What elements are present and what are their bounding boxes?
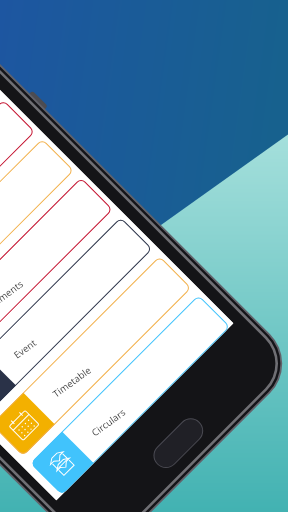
button[interactable]: Timetable icon — [0, 256, 191, 456]
staticText: Event — [10, 333, 40, 364]
staticText: Circulars — [87, 401, 130, 444]
button[interactable]: Assignments icon — [0, 178, 113, 378]
button[interactable]: Attendance icon — [0, 100, 35, 300]
button[interactable]: Messages icon — [0, 139, 74, 339]
button[interactable]: Circulars icon — [30, 295, 230, 495]
button[interactable]: Event icon — [0, 217, 152, 417]
other: Circulars icon — [30, 431, 94, 495]
other: Event icon — [0, 354, 16, 417]
other: Timetable icon — [0, 393, 55, 456]
staticText: Timetable — [49, 358, 95, 405]
staticText: Assignments — [0, 271, 27, 328]
